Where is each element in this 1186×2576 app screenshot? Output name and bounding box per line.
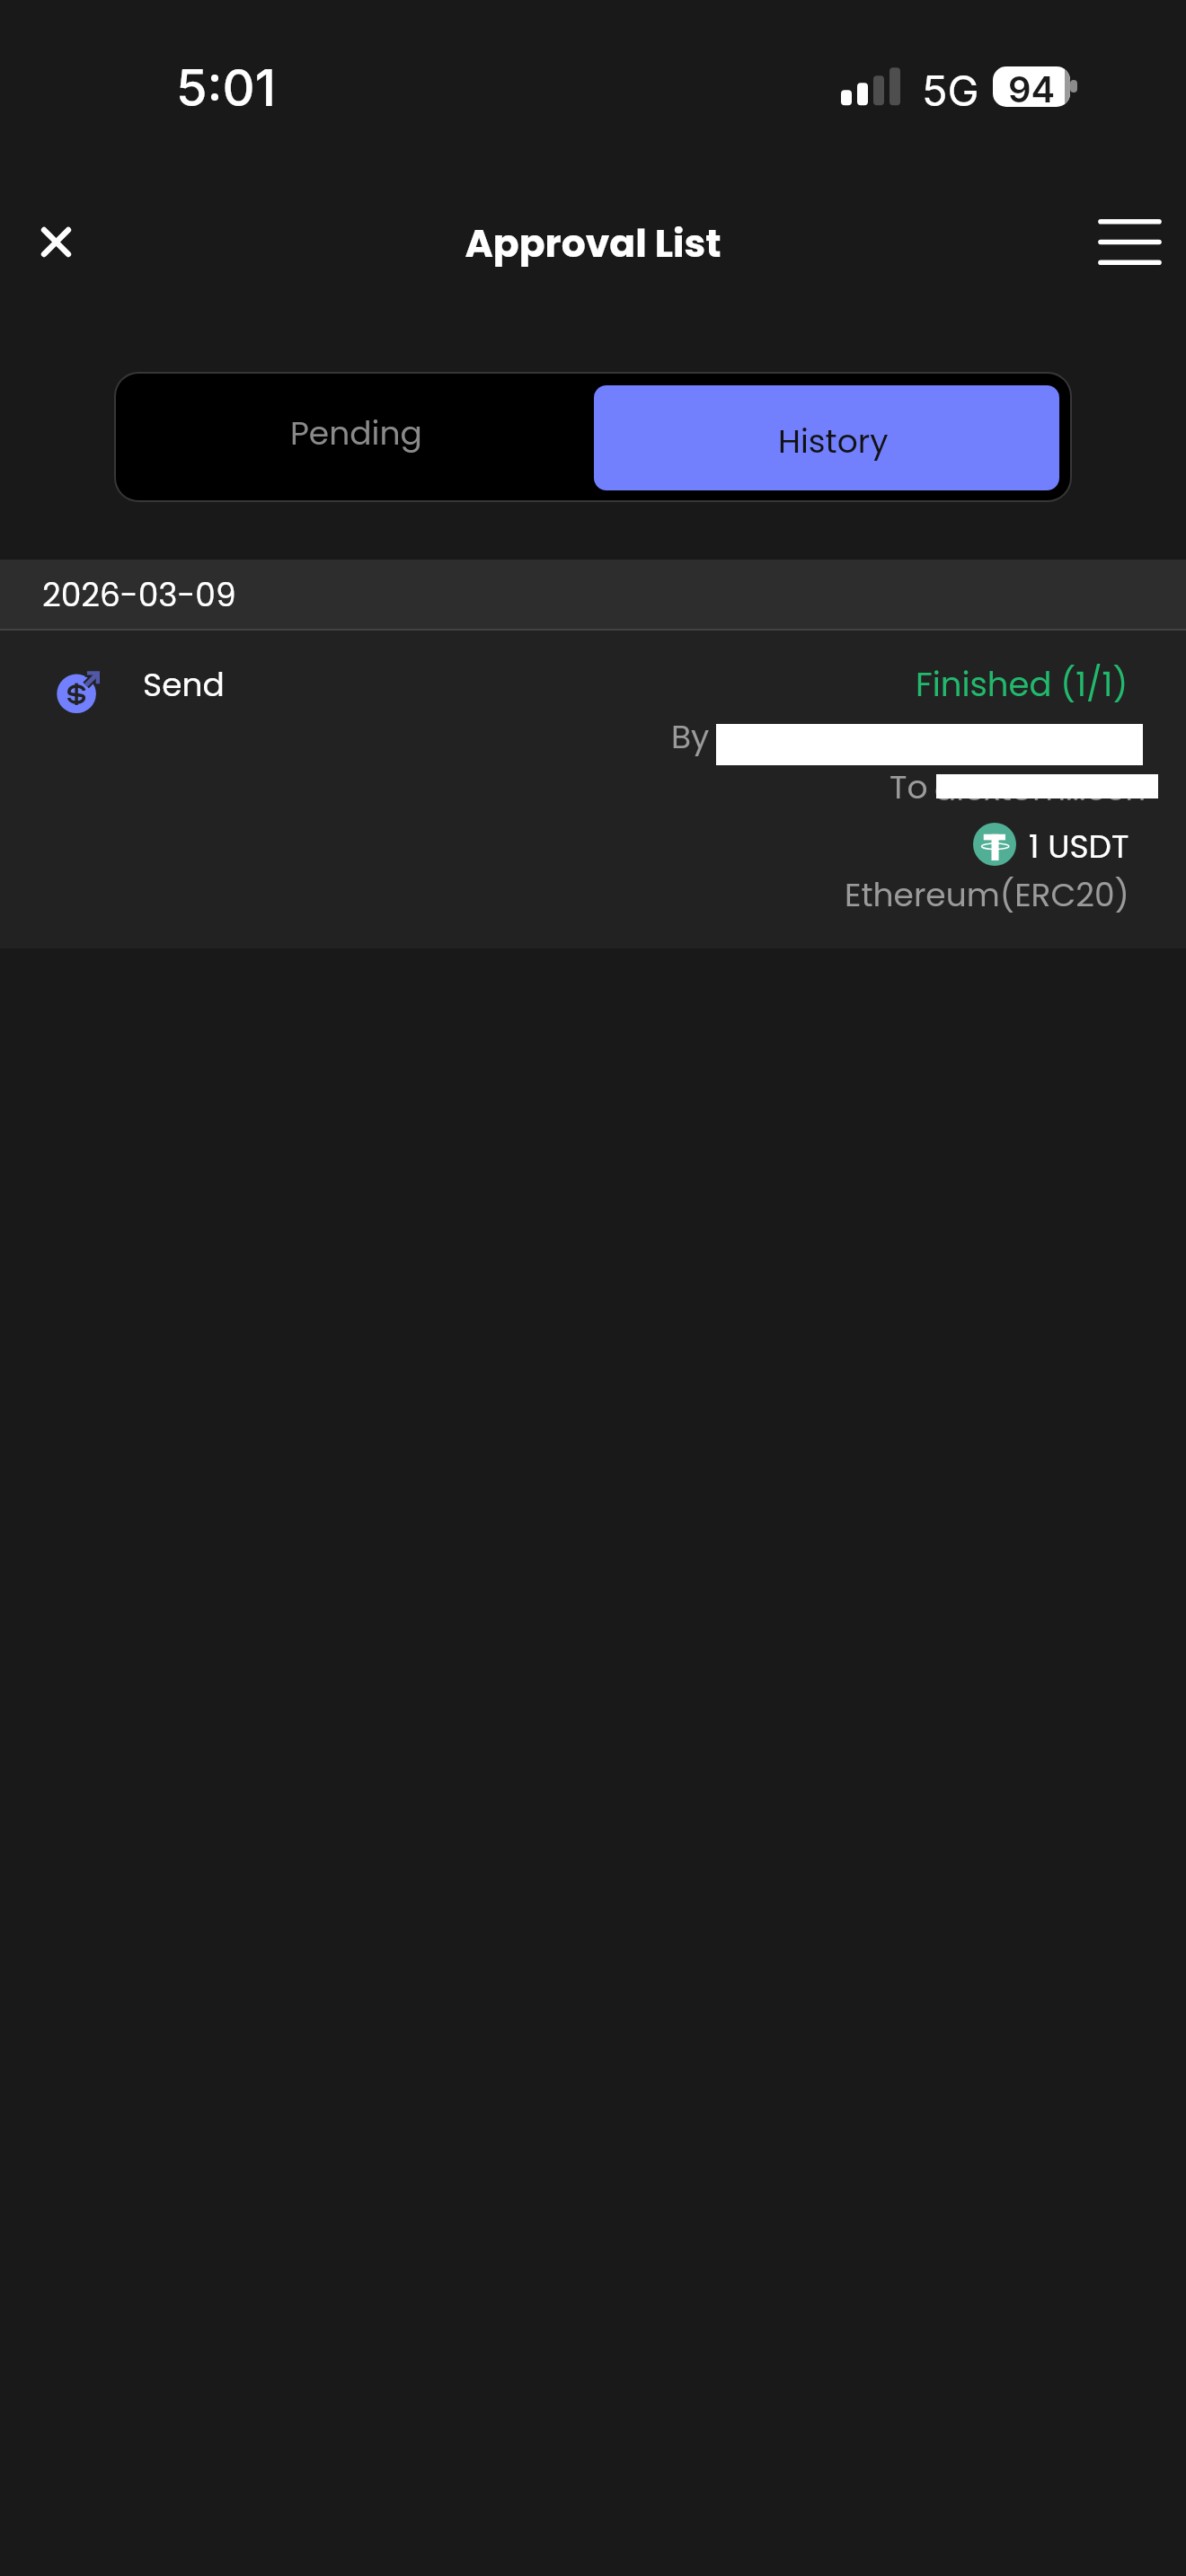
staticText: Finished (1/1) xyxy=(916,661,1128,708)
button[interactable]: History xyxy=(594,385,1059,490)
staticText: Pending xyxy=(290,410,422,455)
button[interactable]: Close xyxy=(18,204,94,280)
button[interactable]: Menu xyxy=(1090,199,1169,286)
staticText: By xyxy=(671,714,710,759)
staticText: To xyxy=(889,764,928,809)
staticText: Send xyxy=(143,662,225,707)
staticText: Approval List xyxy=(0,216,1186,269)
staticText: 5:01 xyxy=(176,57,276,119)
button[interactable]: Pending xyxy=(116,374,594,500)
staticText: 5G xyxy=(922,65,979,116)
staticText: alextom...cchh xyxy=(934,766,1158,807)
staticText: 94 xyxy=(1008,67,1056,107)
staticText: buttonpushkh b1b dHl5tc xyxy=(716,717,1084,758)
staticText: History xyxy=(778,419,889,463)
staticText: Ethereum(ERC20) xyxy=(845,872,1129,917)
staticText: 1 USDT xyxy=(1029,824,1129,869)
staticText: 2026-03-09 xyxy=(42,572,236,617)
button[interactable]: Send xyxy=(0,631,1186,948)
